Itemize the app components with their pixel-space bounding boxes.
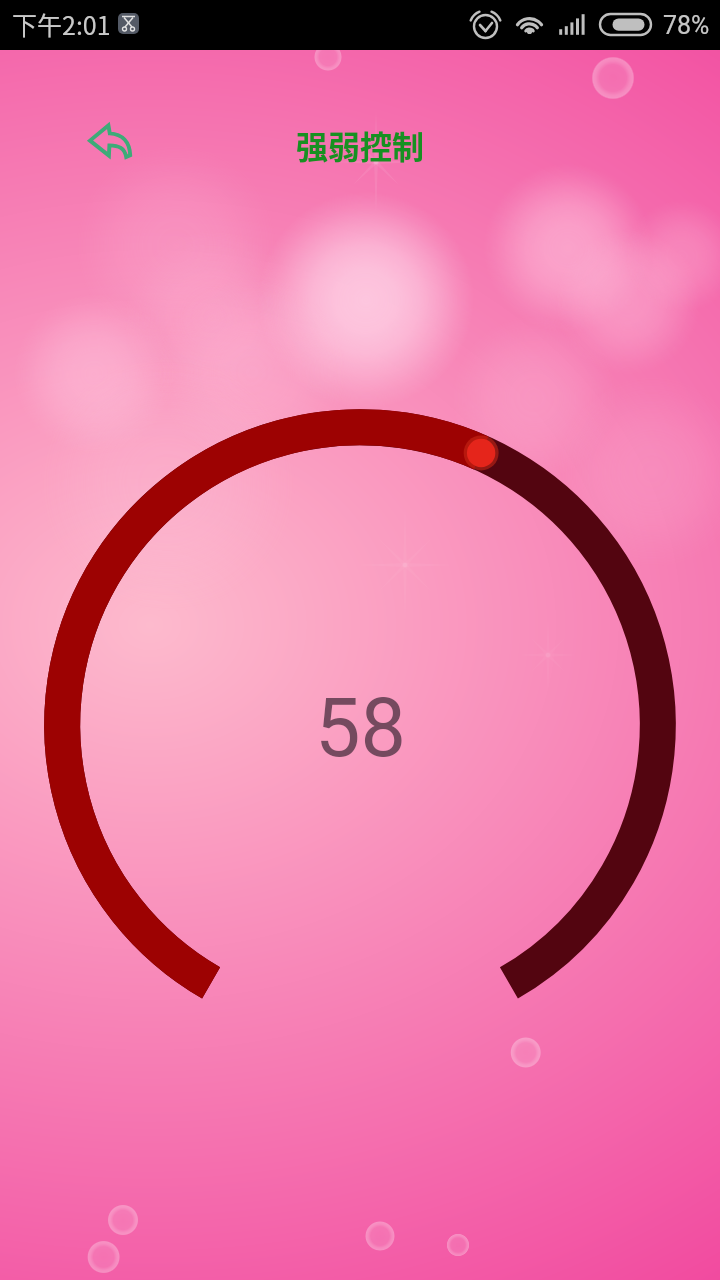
staticText: 78% (663, 11, 710, 40)
button[interactable]: Back (80, 110, 142, 172)
staticText: 下午2:01 (12, 6, 111, 42)
staticText: 58 (315, 681, 407, 776)
staticText: 强弱控制 (296, 122, 425, 168)
